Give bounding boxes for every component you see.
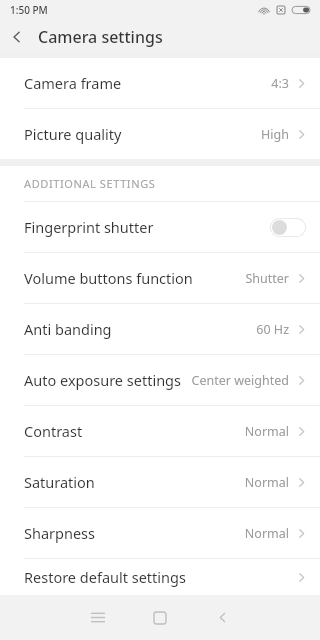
staticText: Normal: [244, 525, 289, 542]
button[interactable]: Back: [0, 20, 34, 53]
staticText: Normal: [244, 423, 289, 440]
staticText: Fingerprint shutter: [24, 217, 154, 237]
staticText: Saturation: [24, 472, 95, 492]
button[interactable]: Back: [198, 595, 246, 640]
button[interactable]: Auto exposure settings: [0, 355, 320, 405]
button[interactable]: Menu: [74, 595, 122, 640]
button[interactable]: Anti banding: [0, 304, 320, 354]
button[interactable]: Picture quality: [0, 109, 320, 159]
staticText: Restore default settings: [24, 567, 186, 587]
staticText: Volume buttons function: [24, 268, 193, 288]
button[interactable]: Sharpness: [0, 508, 320, 558]
staticText: Normal: [244, 474, 289, 491]
button[interactable]: Saturation: [0, 457, 320, 507]
staticText: Sharpness: [24, 523, 95, 543]
button[interactable]: Camera frame: [0, 58, 320, 108]
staticText: Contrast: [24, 421, 83, 441]
staticText: 1:50 PM: [10, 3, 48, 17]
staticText: Camera frame: [24, 73, 122, 93]
staticText: Shutter: [245, 270, 289, 287]
button[interactable]: Home: [136, 595, 184, 640]
staticText: ADDITIONAL SETTINGS: [24, 176, 156, 191]
staticText: High: [261, 126, 289, 143]
staticText: Picture quality: [24, 124, 122, 144]
staticText: Center weighted: [191, 372, 289, 389]
staticText: 4:3: [271, 75, 289, 92]
button[interactable]: Volume buttons function: [0, 253, 320, 303]
button[interactable]: Contrast: [0, 406, 320, 456]
button[interactable]: Restore default settings: [0, 559, 320, 595]
staticText: Camera settings: [38, 26, 163, 48]
staticText: 60 Hz: [256, 321, 289, 338]
staticText: Anti banding: [24, 319, 112, 339]
staticText: Auto exposure settings: [24, 370, 181, 390]
button[interactable]: Fingerprint shutter: [0, 202, 320, 252]
